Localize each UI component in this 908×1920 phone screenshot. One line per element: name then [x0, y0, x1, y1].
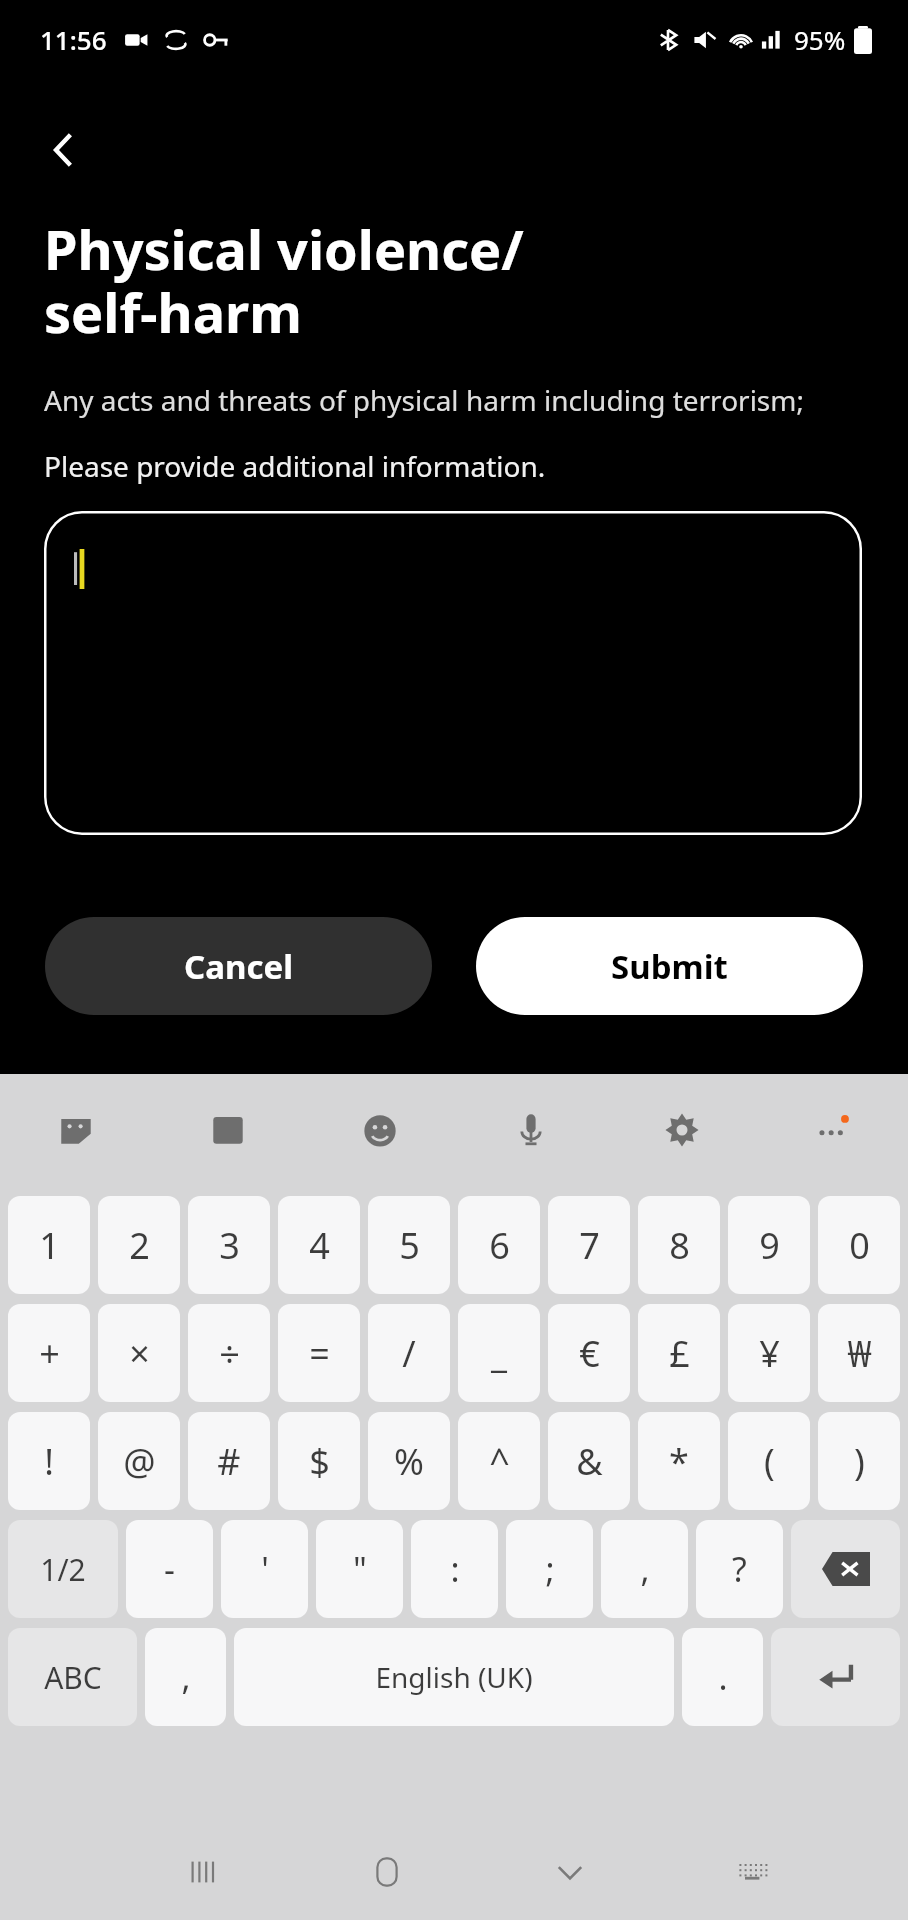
button[interactable]: Cancel	[45, 917, 432, 1015]
staticText: Cancel	[184, 944, 293, 989]
button[interactable]: *	[638, 1412, 720, 1510]
staticText: /	[402, 1329, 416, 1378]
staticText: ^	[489, 1437, 510, 1486]
button[interactable]: 1/2	[8, 1520, 118, 1618]
staticText: 9	[759, 1221, 780, 1270]
staticText: %	[394, 1437, 424, 1486]
staticText: ×	[129, 1329, 150, 1378]
button[interactable]: Submit	[476, 917, 863, 1015]
staticText: 3	[219, 1221, 240, 1270]
button[interactable]: ₩	[818, 1304, 900, 1402]
staticText: +	[39, 1329, 60, 1378]
button[interactable]: Stickers	[0, 1074, 152, 1186]
staticText: .	[718, 1654, 728, 1700]
staticText: 95%	[794, 22, 846, 57]
button[interactable]: .	[682, 1628, 763, 1726]
staticText: 1	[39, 1221, 60, 1270]
button[interactable]: #	[188, 1412, 270, 1510]
staticText: 2	[129, 1221, 150, 1270]
button[interactable]: Keyboard settings	[606, 1074, 757, 1186]
button[interactable]: ¥	[728, 1304, 810, 1402]
staticText: 6	[489, 1221, 510, 1270]
button[interactable]: Additional information input	[44, 511, 862, 835]
button[interactable]: (	[728, 1412, 810, 1510]
button[interactable]: More options	[757, 1074, 908, 1186]
staticText: ¥	[759, 1329, 780, 1378]
button[interactable]: ;	[506, 1520, 593, 1618]
staticText: @	[123, 1437, 156, 1486]
button[interactable]: 3	[188, 1196, 270, 1294]
button[interactable]: $	[278, 1412, 360, 1510]
staticText: 5	[399, 1221, 420, 1270]
staticText: 11:56	[40, 22, 107, 57]
staticText: ;	[545, 1546, 555, 1592]
staticText: &	[576, 1437, 603, 1486]
button[interactable]: 0	[818, 1196, 900, 1294]
button[interactable]: ÷	[188, 1304, 270, 1402]
button[interactable]: 7	[548, 1196, 630, 1294]
staticText: 4	[309, 1221, 330, 1270]
staticText: _	[491, 1329, 507, 1378]
button[interactable]: /	[368, 1304, 450, 1402]
button[interactable]: "	[316, 1520, 403, 1618]
button[interactable]: =	[278, 1304, 360, 1402]
button[interactable]: Enter	[771, 1628, 900, 1726]
staticText: "	[353, 1546, 367, 1592]
button[interactable]: ×	[98, 1304, 180, 1402]
staticText: Any acts and threats of physical harm in…	[44, 381, 804, 419]
button[interactable]: @	[98, 1412, 180, 1510]
staticText: 8	[669, 1221, 690, 1270]
button[interactable]: _	[458, 1304, 540, 1402]
button[interactable]: 6	[458, 1196, 540, 1294]
button[interactable]: 1	[8, 1196, 90, 1294]
button[interactable]: Recents	[111, 1824, 295, 1920]
button[interactable]: &	[548, 1412, 630, 1510]
staticText: ÷	[219, 1329, 240, 1378]
staticText: £	[669, 1329, 690, 1378]
button[interactable]: Back	[26, 112, 102, 188]
button[interactable]: ?	[696, 1520, 783, 1618]
staticText: ABC	[44, 1657, 102, 1698]
staticText: Physical violence/ self-harm	[44, 212, 524, 349]
staticText: 7	[579, 1221, 600, 1270]
button[interactable]: ABC	[8, 1628, 137, 1726]
button[interactable]: 8	[638, 1196, 720, 1294]
staticText: :	[450, 1546, 460, 1592]
button[interactable]: Emoji	[304, 1074, 455, 1186]
button[interactable]: ^	[458, 1412, 540, 1510]
staticText: $	[309, 1437, 330, 1486]
staticText: ₩	[847, 1329, 872, 1378]
staticText: English (UK)	[375, 1658, 533, 1696]
button[interactable]: English (UK)	[234, 1628, 674, 1726]
button[interactable]: 4	[278, 1196, 360, 1294]
staticText: (	[764, 1437, 775, 1486]
button[interactable]: £	[638, 1304, 720, 1402]
staticText: €	[579, 1329, 600, 1378]
button[interactable]: '	[221, 1520, 308, 1618]
button[interactable]: GIF	[152, 1074, 304, 1186]
button[interactable]: 9	[728, 1196, 810, 1294]
button[interactable]: %	[368, 1412, 450, 1510]
button[interactable]: Home	[295, 1824, 478, 1920]
button[interactable]: !	[8, 1412, 90, 1510]
button[interactable]: €	[548, 1304, 630, 1402]
staticText: 0	[849, 1221, 870, 1270]
button[interactable]: 5	[368, 1196, 450, 1294]
button[interactable]: :	[411, 1520, 498, 1618]
button[interactable]: -	[126, 1520, 213, 1618]
button[interactable]: ,	[145, 1628, 226, 1726]
button[interactable]: +	[8, 1304, 90, 1402]
button[interactable]: ,	[601, 1520, 688, 1618]
staticText: Submit	[611, 944, 728, 989]
staticText: '	[261, 1546, 269, 1592]
staticText: -	[164, 1546, 175, 1592]
button[interactable]: Backspace	[791, 1520, 900, 1618]
button[interactable]: Hide keyboard	[478, 1824, 661, 1920]
button[interactable]: )	[818, 1412, 900, 1510]
staticText: ?	[732, 1546, 747, 1592]
button[interactable]: Voice input	[455, 1074, 606, 1186]
button[interactable]: Change keyboard	[661, 1824, 844, 1920]
staticText: *	[669, 1437, 689, 1486]
button[interactable]: 2	[98, 1196, 180, 1294]
staticText: )	[854, 1437, 865, 1486]
